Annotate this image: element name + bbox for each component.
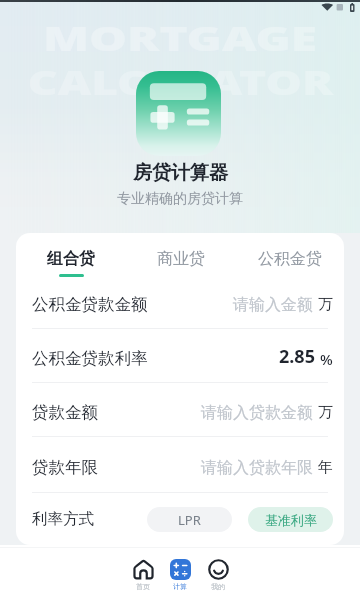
button[interactable]: 公积金贷款利率 [16, 329, 344, 382]
staticText: LPR [178, 511, 201, 529]
button[interactable]: 计算 [169, 559, 191, 591]
staticText: 万 [318, 295, 333, 314]
button[interactable]: 基准利率 [248, 507, 333, 532]
staticText: CALCULATOR [27, 61, 334, 105]
staticText: 请输入贷款年限 [201, 458, 313, 478]
other: 首页 [133, 559, 154, 580]
button[interactable]: 组合贷 [16, 233, 126, 275]
staticText: 贷款金额 [32, 402, 98, 423]
staticText: 商业贷 [157, 249, 205, 269]
staticText: MORTGAGE [43, 17, 317, 61]
button[interactable]: 公积金贷款金额 [16, 275, 344, 328]
staticText: 万 [318, 403, 333, 422]
staticText: 我的 [211, 582, 225, 591]
staticText: 请输入贷款金额 [201, 403, 313, 423]
staticText: 公积金贷 [258, 249, 322, 269]
button[interactable]: LPR [147, 507, 232, 532]
staticText: 基准利率 [265, 512, 317, 528]
button[interactable]: 贷款金额 [16, 383, 344, 436]
other: 我的 [208, 559, 229, 580]
staticText: 请输入金额 [233, 295, 313, 315]
staticText: 2.85 [279, 344, 315, 369]
button[interactable]: 商业贷 [126, 233, 235, 275]
staticText: 公积金贷款金额 [32, 294, 148, 315]
staticText: 专业精确的房贷计算 [117, 190, 243, 208]
staticText: % [320, 349, 333, 369]
button[interactable]: 公积金贷 [235, 233, 344, 275]
staticText: 首页 [136, 582, 150, 591]
button[interactable]: 贷款年限 [16, 437, 344, 492]
staticText: 贷款年限 [32, 457, 98, 478]
other: 计算 [170, 559, 191, 580]
staticText: 计算 [173, 582, 187, 591]
staticText: 组合贷 [47, 249, 95, 269]
button[interactable]: 我的 [207, 559, 229, 591]
staticText: 年 [318, 458, 333, 477]
staticText: 公积金贷款利率 [32, 348, 148, 369]
button[interactable]: 首页 [132, 559, 154, 591]
staticText: 房贷计算器 [133, 161, 228, 185]
staticText: 利率方式 [32, 509, 94, 529]
